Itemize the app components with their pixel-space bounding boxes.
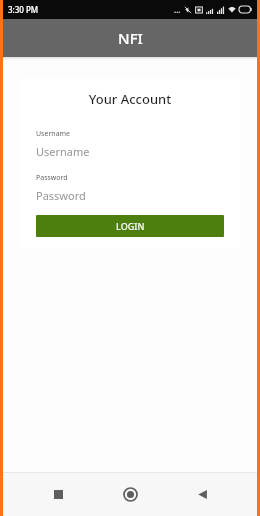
staticText: Password <box>36 173 68 183</box>
staticText: Username <box>36 129 71 139</box>
staticText: NFI <box>118 28 143 48</box>
button[interactable]: Home <box>113 477 147 511</box>
staticText: Password <box>36 188 86 202</box>
staticText: Your Account <box>36 90 224 108</box>
staticText: ... <box>174 4 181 15</box>
button[interactable]: Password <box>36 188 224 202</box>
button[interactable]: Username <box>36 144 224 158</box>
button[interactable]: Recent apps <box>41 477 75 511</box>
button[interactable]: LOGIN <box>36 215 224 237</box>
staticText: LOGIN <box>116 220 145 232</box>
staticText: Username <box>36 144 90 158</box>
button[interactable]: Back <box>185 477 219 511</box>
staticText: 3:30 PM <box>8 4 39 15</box>
